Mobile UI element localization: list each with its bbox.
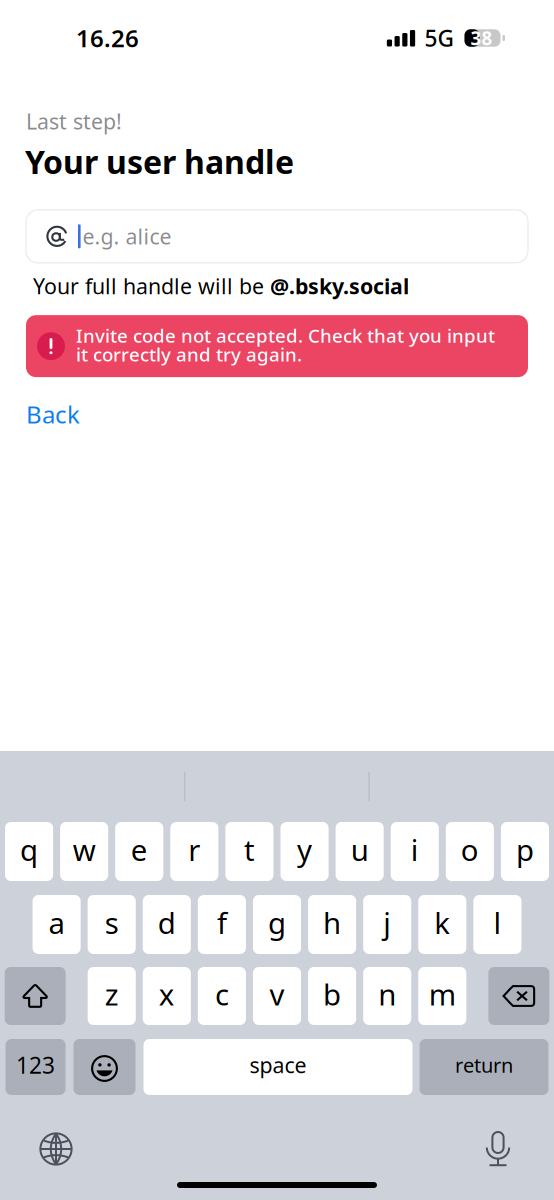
button[interactable]: i bbox=[391, 822, 439, 881]
staticText: p bbox=[516, 830, 534, 869]
button[interactable]: d bbox=[143, 895, 191, 954]
staticText: x bbox=[159, 974, 175, 1013]
button[interactable]: space bbox=[143, 1039, 412, 1095]
staticText: e bbox=[131, 830, 148, 869]
staticText: z bbox=[105, 974, 119, 1013]
staticText: Invite code not accepted. Check that you… bbox=[76, 323, 495, 367]
button[interactable]: m bbox=[418, 967, 466, 1025]
button[interactable]: y bbox=[280, 822, 329, 881]
staticText: d bbox=[158, 903, 176, 942]
button[interactable]: s bbox=[88, 895, 136, 954]
button[interactable]: Shift bbox=[5, 967, 66, 1025]
button[interactable]: c bbox=[198, 967, 246, 1025]
button[interactable]: Back bbox=[0, 398, 80, 430]
button[interactable]: k bbox=[418, 895, 466, 954]
button[interactable]: t bbox=[225, 822, 273, 881]
button[interactable]: f bbox=[198, 895, 246, 954]
staticText: h bbox=[323, 903, 341, 942]
staticText: Your full handle will be @.bsky.social bbox=[33, 272, 409, 300]
button[interactable]: a bbox=[32, 895, 81, 954]
staticText: k bbox=[434, 903, 450, 942]
staticText: o bbox=[461, 830, 479, 869]
staticText: y bbox=[297, 830, 312, 869]
button[interactable]: n bbox=[363, 967, 411, 1025]
button[interactable]: o bbox=[446, 822, 494, 881]
button[interactable]: u bbox=[336, 822, 384, 881]
button[interactable]: l bbox=[473, 895, 521, 954]
staticText: s bbox=[105, 903, 119, 942]
staticText: w bbox=[73, 830, 96, 869]
button[interactable]: h bbox=[308, 895, 356, 954]
staticText: r bbox=[188, 830, 200, 869]
button[interactable]: e bbox=[115, 822, 163, 881]
staticText: 16.26 bbox=[76, 22, 139, 54]
button[interactable]: p bbox=[501, 822, 549, 881]
button[interactable]: q bbox=[5, 822, 53, 881]
button[interactable]: b bbox=[308, 967, 356, 1025]
staticText: return bbox=[455, 1052, 513, 1078]
button[interactable]: return bbox=[419, 1039, 548, 1095]
button[interactable]: 123 bbox=[5, 1039, 65, 1095]
staticText: e.g. alice bbox=[83, 222, 172, 250]
button[interactable]: r bbox=[170, 822, 218, 881]
button[interactable]: Emoji bbox=[73, 1039, 135, 1095]
staticText: j bbox=[383, 903, 391, 942]
staticText: u bbox=[351, 830, 369, 869]
staticText: v bbox=[269, 974, 284, 1013]
staticText: f bbox=[217, 903, 227, 942]
staticText: c bbox=[215, 974, 229, 1013]
staticText: Back bbox=[26, 398, 80, 430]
staticText: i bbox=[411, 830, 419, 869]
staticText: 123 bbox=[16, 1050, 55, 1080]
button[interactable]: w bbox=[60, 822, 108, 881]
staticText: a bbox=[49, 903, 65, 942]
button[interactable]: v bbox=[253, 967, 301, 1025]
button[interactable]: Dictate bbox=[470, 1125, 526, 1173]
staticText: q bbox=[20, 830, 38, 869]
staticText: m bbox=[429, 974, 456, 1013]
staticText: Your user handle bbox=[25, 140, 294, 183]
button[interactable]: Delete bbox=[488, 967, 549, 1025]
button[interactable]: e.g. alice bbox=[26, 210, 528, 263]
staticText: space bbox=[249, 1051, 306, 1079]
staticText: t bbox=[244, 830, 255, 869]
button[interactable]: x bbox=[143, 967, 191, 1025]
staticText: n bbox=[378, 974, 396, 1013]
staticText: b bbox=[323, 974, 341, 1013]
staticText: l bbox=[493, 903, 501, 942]
staticText: Last step! bbox=[26, 107, 122, 135]
button[interactable]: j bbox=[363, 895, 411, 954]
button[interactable]: g bbox=[253, 895, 301, 954]
button[interactable]: z bbox=[88, 967, 136, 1025]
staticText: 5G bbox=[424, 23, 453, 53]
button[interactable]: Switch keyboard bbox=[28, 1125, 84, 1173]
staticText: 38 bbox=[470, 26, 492, 50]
staticText: g bbox=[268, 903, 286, 942]
